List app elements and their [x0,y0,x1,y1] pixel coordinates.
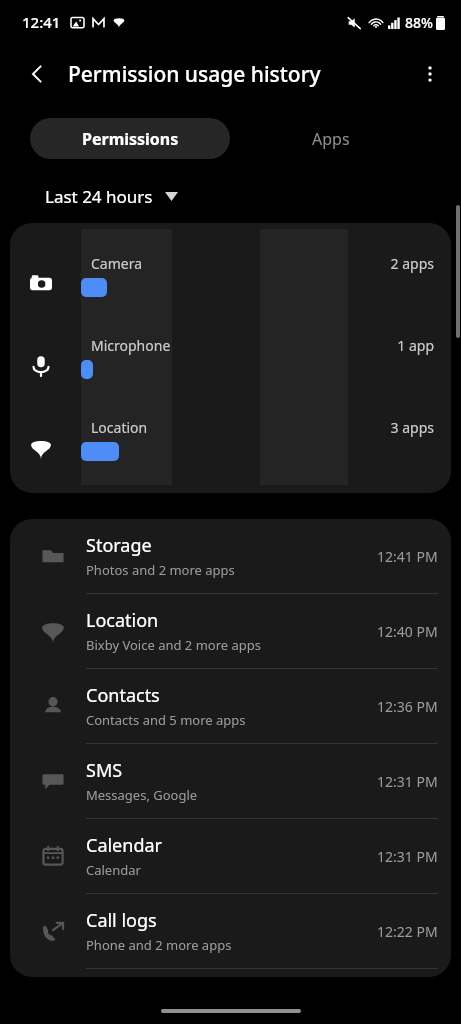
staticText: 12:40 PM [377,622,438,641]
button[interactable]: Back [14,51,60,97]
staticText: Calendar [86,861,141,879]
button[interactable]: Location [10,594,451,668]
staticText: Location [91,418,148,437]
staticText: Last 24 hours [45,185,153,208]
button[interactable]: Camera [10,223,451,493]
staticText: 1 app [10,336,434,355]
staticText: Call logs [86,908,157,933]
staticText: Storage [86,533,152,558]
button[interactable]: Apps [230,118,431,159]
button[interactable]: Contacts [10,669,451,743]
staticText: Bixby Voice and 2 more apps [86,636,262,654]
staticText: Calendar [86,833,162,858]
staticText: 12:41 PM [377,547,438,566]
button[interactable]: Call logs [10,894,451,968]
button[interactable]: Calendar [10,819,451,893]
button[interactable]: Storage [10,519,451,593]
button[interactable]: Last 24 hours [40,179,183,214]
button[interactable]: SMS [10,744,451,818]
staticText: Photos and 2 more apps [86,561,235,579]
staticText: 12:41 [22,12,61,32]
staticText: SMS [86,758,123,783]
staticText: 2 apps [10,254,434,273]
button[interactable]: Permissions [30,118,230,159]
staticText: Camera [91,254,143,273]
staticText: 88% [405,13,433,32]
staticText: Location [86,608,159,633]
staticText: Phone and 2 more apps [86,936,232,954]
staticText: Contacts [86,683,160,708]
staticText: Microphone [91,336,171,355]
button[interactable]: More options [407,51,453,97]
staticText: 12:36 PM [377,697,438,716]
staticText: Apps [312,128,350,150]
staticText: Permissions [82,128,179,150]
staticText: Contacts and 5 more apps [86,711,246,729]
staticText: 12:22 PM [377,922,438,941]
staticText: 12:31 PM [377,847,438,866]
staticText: 3 apps [10,418,434,437]
staticText: 12:31 PM [377,772,438,791]
staticText: Messages, Google [86,786,198,804]
staticText: Permission usage history [68,60,321,89]
